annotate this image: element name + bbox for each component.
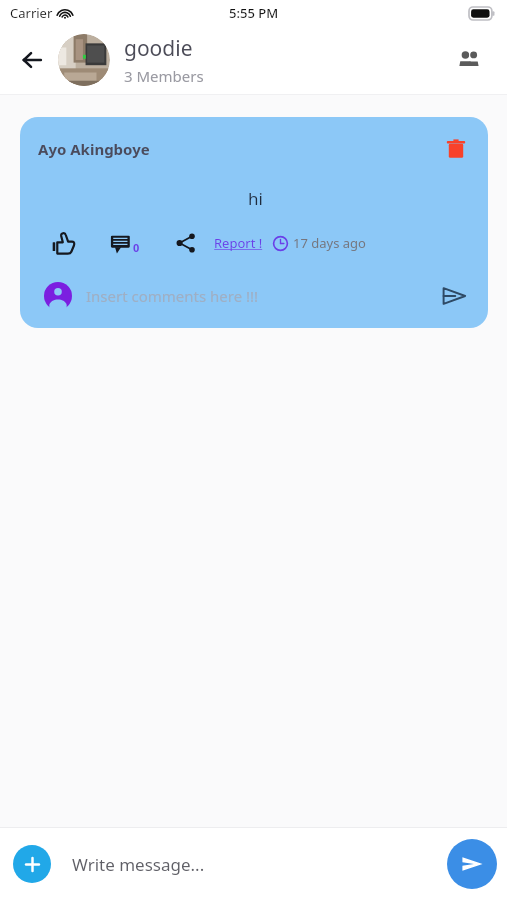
button[interactable]: Share xyxy=(170,227,202,259)
button[interactable]: Back xyxy=(8,36,56,84)
button[interactable]: Send comment xyxy=(436,278,472,314)
staticText: Ayo Akingboye xyxy=(38,139,150,159)
button[interactable]: Like xyxy=(46,226,80,260)
staticText: Insert comments here !!! xyxy=(86,286,259,306)
button[interactable]: Write message... xyxy=(72,828,447,900)
button[interactable]: 0 xyxy=(110,232,140,255)
staticText: 17 days ago xyxy=(293,234,366,252)
button[interactable]: Insert comments here !!! xyxy=(86,286,436,306)
button[interactable]: Delete post xyxy=(440,133,472,165)
button[interactable]: Members xyxy=(445,36,493,84)
staticText: 0 xyxy=(133,240,140,255)
staticText: goodie xyxy=(124,34,193,63)
button[interactable]: Add attachment xyxy=(13,845,51,883)
button[interactable] xyxy=(58,34,110,86)
staticText: Report ! xyxy=(214,234,263,252)
button[interactable]: goodie xyxy=(124,34,445,86)
staticText: hi xyxy=(248,187,263,210)
button[interactable]: Report ! xyxy=(214,234,263,252)
button[interactable]: Send message xyxy=(447,839,497,889)
staticText: 3 Members xyxy=(124,66,204,86)
staticText: 5:55 PM xyxy=(229,4,279,22)
staticText: Write message... xyxy=(72,853,205,876)
button[interactable]: Ayo Akingboye xyxy=(20,117,488,328)
staticText: Carrier xyxy=(10,4,53,22)
